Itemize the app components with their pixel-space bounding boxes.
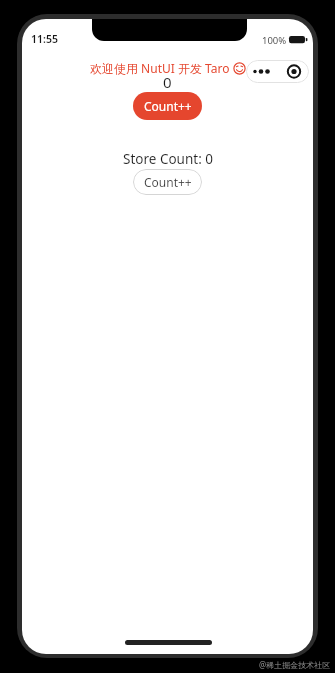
staticText: 100% — [262, 34, 287, 47]
staticText: 0 — [163, 72, 172, 92]
staticText: Store Count: 0 — [123, 150, 213, 168]
button[interactable] — [246, 60, 309, 83]
button[interactable]: Count++ — [133, 169, 202, 195]
staticText: 欢迎使用 NutUI 开发 Taro — [90, 60, 230, 76]
staticText: 11:55 — [31, 32, 58, 46]
staticText: Count++ — [144, 98, 192, 114]
staticText: @稀土掘金技术社区 — [259, 659, 331, 670]
staticText: Count++ — [144, 174, 192, 190]
button[interactable]: Count++ — [133, 92, 202, 120]
